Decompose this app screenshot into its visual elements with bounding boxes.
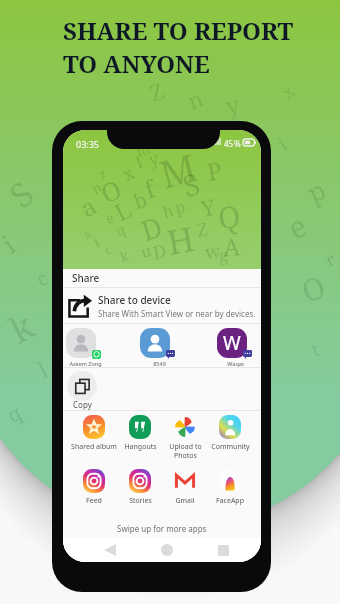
staticText: e bbox=[102, 207, 117, 228]
button[interactable]: Back bbox=[99, 539, 121, 561]
staticText: r bbox=[322, 246, 339, 273]
staticText: 45 bbox=[224, 138, 234, 149]
staticText: M bbox=[154, 140, 202, 200]
staticText: n bbox=[184, 82, 207, 116]
staticText: I bbox=[132, 151, 146, 173]
staticText: D bbox=[136, 207, 167, 249]
staticText: c bbox=[31, 264, 53, 293]
staticText: e bbox=[281, 204, 314, 249]
staticText: S bbox=[178, 163, 205, 206]
staticText: k bbox=[117, 245, 132, 266]
staticText: Swipe up for more apps bbox=[117, 523, 207, 534]
staticText: w bbox=[204, 238, 222, 265]
staticText: L bbox=[108, 192, 136, 229]
staticText: H bbox=[163, 215, 198, 265]
staticText: Shared album bbox=[71, 442, 117, 452]
staticText: t bbox=[308, 337, 323, 362]
staticText: m bbox=[133, 138, 153, 161]
staticText: Q bbox=[216, 195, 243, 238]
staticText: Upload to Photos bbox=[169, 442, 202, 460]
staticText: Share to device bbox=[98, 293, 171, 307]
staticText: a bbox=[74, 189, 102, 224]
staticText: Z bbox=[145, 74, 169, 107]
staticText: i bbox=[0, 227, 22, 260]
staticText: O bbox=[95, 170, 127, 210]
staticText: i bbox=[272, 130, 293, 157]
staticText: Community bbox=[211, 442, 250, 452]
staticText: u bbox=[138, 239, 155, 263]
button[interactable]: Community bbox=[207, 415, 253, 452]
button[interactable]: Recents bbox=[212, 539, 234, 561]
button[interactable]: 8549 bbox=[131, 328, 187, 367]
button[interactable]: Share to device bbox=[63, 288, 261, 323]
staticText: c bbox=[102, 240, 114, 258]
staticText: f bbox=[140, 171, 159, 206]
button[interactable]: W bbox=[208, 328, 261, 367]
staticText: SHARE TO REPORT bbox=[63, 14, 294, 47]
button[interactable]: Home bbox=[156, 539, 178, 561]
button[interactable]: Feed bbox=[71, 469, 117, 506]
staticText: Share With Smart View or near by devices… bbox=[98, 308, 256, 319]
staticText: q bbox=[113, 219, 128, 240]
staticText: n bbox=[88, 177, 106, 198]
staticText: Hangouts bbox=[124, 442, 157, 452]
staticText: Stories bbox=[129, 496, 152, 506]
staticText: g bbox=[218, 244, 229, 266]
staticText: A bbox=[222, 229, 241, 263]
button[interactable]: Stories bbox=[117, 469, 163, 506]
staticText: b bbox=[130, 186, 151, 215]
button[interactable]: Gmail bbox=[162, 469, 208, 506]
staticText: Feed bbox=[86, 496, 102, 506]
staticText: Waqar. bbox=[227, 360, 245, 367]
staticText: P bbox=[204, 153, 225, 188]
staticText: Share bbox=[72, 271, 100, 285]
staticText: 8549 bbox=[153, 360, 166, 367]
button[interactable]: Shared album bbox=[71, 415, 117, 452]
staticText: z bbox=[96, 164, 109, 182]
button[interactable]: Azeem Zong bbox=[63, 328, 113, 367]
button[interactable]: FaceApp bbox=[207, 469, 253, 506]
staticText: k bbox=[1, 301, 43, 354]
staticText: Copy bbox=[73, 399, 92, 410]
staticText: x bbox=[277, 78, 300, 105]
staticText: y bbox=[222, 88, 242, 121]
staticText: q bbox=[2, 398, 27, 428]
button[interactable]: Upload to Photos bbox=[162, 415, 208, 460]
staticText: p bbox=[301, 171, 331, 210]
staticText: h bbox=[160, 199, 177, 223]
staticText: S bbox=[0, 170, 43, 218]
staticText: l bbox=[33, 354, 52, 384]
staticText: TO ANYONE bbox=[63, 47, 210, 80]
staticText: O bbox=[296, 265, 331, 312]
button[interactable]: Hangouts bbox=[117, 415, 163, 452]
staticText: Z bbox=[195, 216, 210, 243]
staticText: Y bbox=[198, 191, 217, 223]
staticText: 03:35 bbox=[76, 138, 100, 150]
staticText: i bbox=[90, 232, 103, 251]
staticText: y bbox=[146, 147, 162, 171]
staticText: s bbox=[80, 223, 95, 243]
staticText: Azeem Zong bbox=[69, 360, 102, 367]
staticText: FaceApp bbox=[216, 496, 244, 506]
staticText: x bbox=[118, 160, 139, 187]
staticText: % bbox=[234, 138, 241, 149]
staticText: p bbox=[172, 195, 188, 219]
staticText: W bbox=[223, 330, 241, 356]
button[interactable]: Copy bbox=[63, 371, 103, 410]
staticText: D bbox=[150, 238, 170, 265]
staticText: Gmail bbox=[175, 496, 195, 506]
